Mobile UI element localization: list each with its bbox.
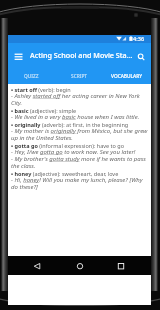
button[interactable]: Home (73, 259, 87, 273)
staticText: VOCABULARY (111, 73, 143, 80)
staticText: - My mother is originally from México, b… (11, 127, 148, 134)
staticText: do these?] (11, 183, 38, 190)
staticText: - My brother's gotta study more if he wa… (11, 155, 146, 162)
button[interactable]: QUIZZ (8, 70, 55, 85)
staticText: 4:36 (133, 35, 145, 43)
staticText: SCRIPT (71, 73, 88, 80)
staticText: City. (11, 99, 23, 106)
staticText: • honey (adjective): sweetheart, dear, l… (11, 170, 119, 177)
staticText: • basic (adjective): simple (11, 107, 77, 114)
staticText: the class. (11, 162, 36, 169)
button[interactable]: Recent apps (114, 259, 128, 273)
staticText: - Ashley started off her acting career i… (11, 92, 140, 99)
button[interactable]: Back (30, 259, 44, 273)
button[interactable]: VOCABULARY (103, 70, 151, 85)
staticText: • gotta go (informal expression): have t… (11, 142, 125, 149)
button[interactable]: Search (134, 47, 151, 64)
button[interactable]: Open navigation menu (10, 47, 27, 64)
staticText: - Hey, I/we gotta go to work now. See yo… (11, 148, 136, 155)
staticText: - Hi, honey! Will you make my lunch, ple… (11, 176, 143, 183)
staticText: up in the United States. (11, 134, 73, 141)
staticText: • start off (verb): begin (11, 86, 71, 93)
staticText: Acting School and Movie Sta... (30, 50, 133, 60)
button[interactable]: SCRIPT (55, 70, 103, 85)
staticText: • originally (adverb): at first, in the … (11, 121, 129, 128)
staticText: QUIZZ (24, 73, 39, 80)
staticText: - We lived in a very basic house when I … (11, 113, 140, 120)
